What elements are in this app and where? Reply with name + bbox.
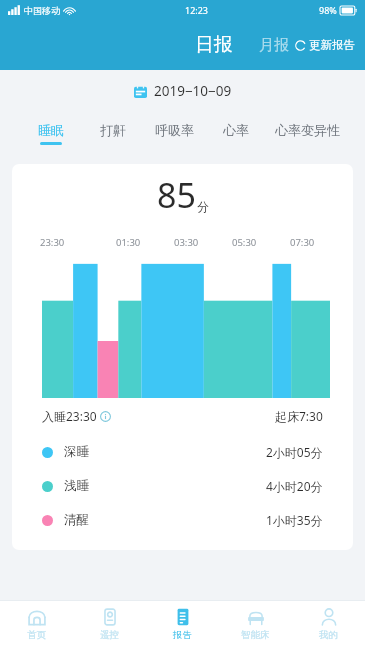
button[interactable]: 深睡	[12, 444, 353, 460]
staticText: 心率	[223, 122, 249, 138]
button[interactable]: 心率变异性	[266, 122, 349, 145]
button[interactable]: 入睡23:30	[42, 408, 111, 424]
staticText: 23:30	[40, 236, 65, 249]
staticText: 85	[157, 172, 196, 218]
button[interactable]: 睡眠	[20, 122, 82, 145]
staticText: 2小时05分	[266, 444, 323, 460]
button[interactable]: 更新报告	[285, 30, 365, 60]
staticText: 我的	[319, 629, 338, 641]
staticText: 4小时20分	[266, 478, 323, 494]
staticText: 分	[197, 199, 209, 214]
staticText: 月报	[259, 36, 289, 55]
staticText: 01:30	[116, 236, 141, 249]
button[interactable]: 浅睡	[12, 478, 353, 494]
staticText: 首页	[27, 629, 46, 641]
staticText: 更新报告	[309, 38, 355, 52]
staticText: 深睡	[64, 444, 89, 460]
button[interactable]: 2019−10−09	[126, 76, 240, 106]
button[interactable]: 月报	[255, 32, 293, 59]
staticText: 报告	[173, 629, 192, 641]
staticText: 12:23	[185, 4, 209, 16]
button[interactable]: 清醒	[12, 512, 353, 528]
button[interactable]: 我的	[292, 601, 365, 648]
button[interactable]: 报告	[146, 601, 219, 648]
staticText: 起床7:30	[275, 408, 323, 424]
staticText: 98%	[319, 4, 337, 16]
button[interactable]: 心率	[205, 122, 266, 145]
staticText: 中国移动	[24, 5, 60, 16]
staticText: 睡眠	[38, 122, 64, 138]
button[interactable]: 遥控	[73, 601, 146, 648]
button[interactable]: 首页	[0, 601, 73, 648]
staticText: 03:30	[174, 236, 199, 249]
staticText: 1小时35分	[266, 512, 323, 528]
staticText: 遥控	[100, 629, 119, 641]
staticText: 心率变异性	[275, 122, 340, 138]
button[interactable]: 日报	[191, 29, 237, 61]
staticText: 清醒	[64, 512, 89, 528]
staticText: 智能床	[241, 629, 270, 641]
staticText: 入睡23:30	[42, 408, 97, 424]
staticText: 2019−10−09	[154, 82, 232, 100]
button[interactable]: 打鼾	[82, 122, 144, 145]
staticText: 浅睡	[64, 478, 89, 494]
staticText: 呼吸率	[155, 122, 194, 138]
button[interactable]: 呼吸率	[144, 122, 205, 145]
other: Info	[100, 411, 111, 422]
button[interactable]: 智能床	[219, 601, 292, 648]
staticText: 07:30	[290, 236, 315, 249]
staticText: 打鼾	[100, 122, 126, 138]
staticText: 日报	[195, 33, 233, 57]
staticText: 05:30	[232, 236, 257, 249]
